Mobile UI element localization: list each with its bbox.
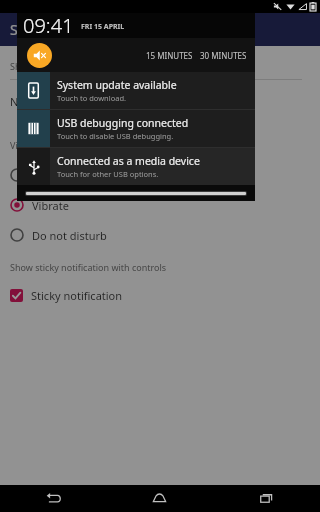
button[interactable]: Drag handle — [25, 191, 247, 196]
button[interactable]: Silent — [10, 165, 320, 185]
button[interactable]: Back — [0, 485, 106, 512]
staticText: USB debugging connected — [57, 116, 189, 130]
staticText: Silent — [32, 168, 61, 183]
button[interactable]: Mute — [27, 43, 52, 68]
staticText: Connected as a media device — [57, 154, 200, 168]
staticText: Touch for other USB options. — [57, 169, 159, 179]
button[interactable]: 30 MINUTES — [200, 50, 247, 61]
staticText: Vibration mode — [10, 139, 76, 151]
button[interactable]: Home — [106, 485, 213, 512]
staticText: System update available — [57, 78, 177, 92]
button[interactable]: USB debugging connected — [17, 110, 255, 147]
staticText: 09:41 — [23, 12, 74, 38]
staticText: Show notifications — [10, 60, 88, 72]
button[interactable]: Do not disturb — [10, 225, 320, 245]
button[interactable]: Sticky notification — [10, 285, 320, 305]
button[interactable]: Settings — [0, 13, 320, 46]
button[interactable]: 15 MINUTES — [146, 50, 193, 61]
staticText: Touch to disable USB debugging. — [57, 131, 174, 141]
button[interactable]: Connected as a media device — [17, 148, 255, 185]
button[interactable]: Recents — [213, 485, 320, 512]
staticText: Notification ringtone — [10, 94, 118, 109]
staticText: Touch to download. — [57, 93, 127, 103]
staticText: Vibrate — [32, 198, 69, 213]
staticText: Settings — [10, 20, 64, 39]
staticText: FRI 15 APRIL — [81, 22, 125, 32]
staticText: Sticky notification — [31, 288, 123, 303]
staticText: Show sticky notification with controls — [10, 261, 167, 273]
staticText: Do not disturb — [32, 228, 107, 243]
button[interactable]: Vibrate — [10, 195, 320, 215]
button[interactable]: System update available — [17, 72, 255, 109]
